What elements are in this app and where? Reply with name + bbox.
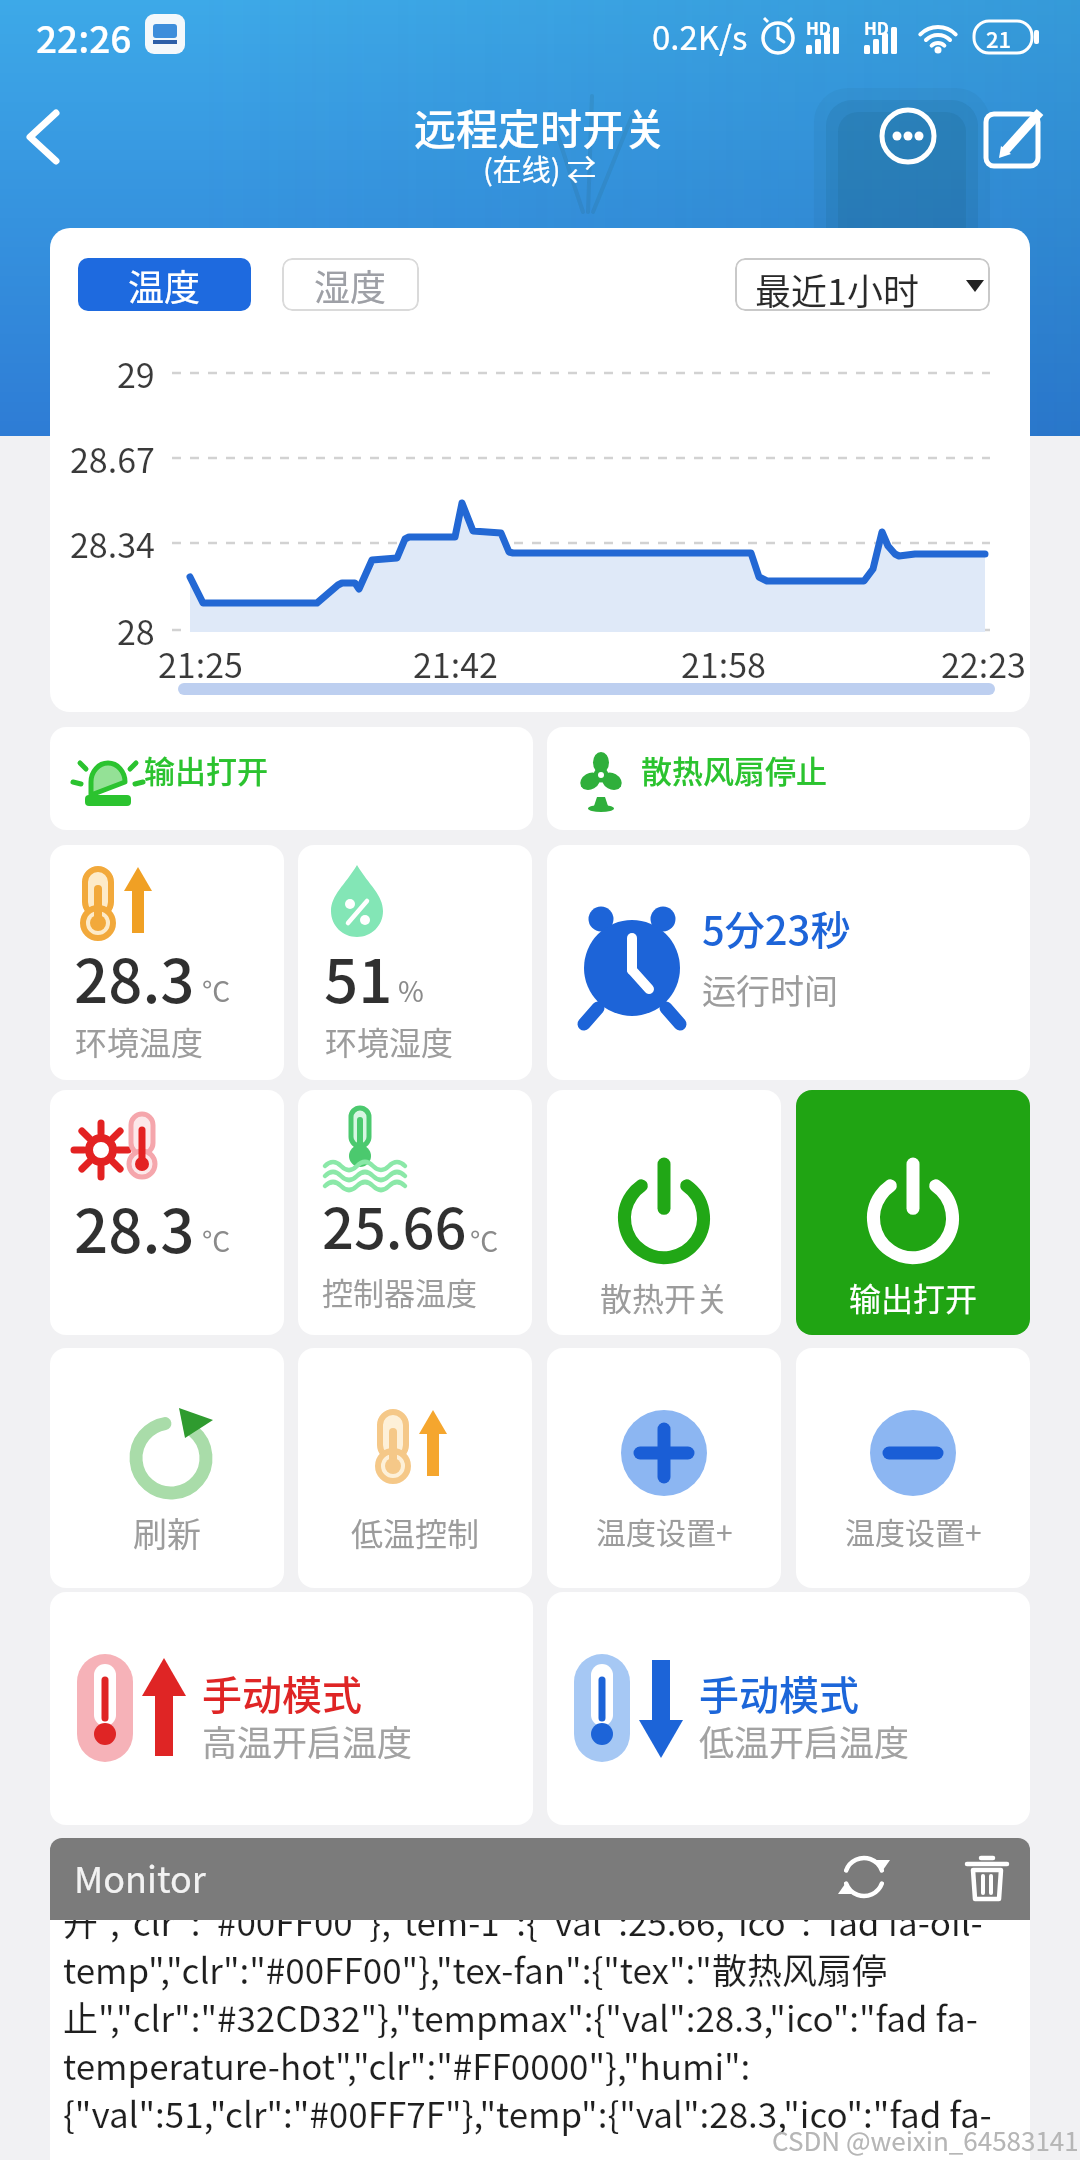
button[interactable]: 手动模式	[50, 1592, 533, 1825]
button[interactable]: 刷新	[50, 1348, 284, 1588]
staticText: 散热开关	[600, 1274, 729, 1320]
staticText: 29	[117, 349, 155, 398]
staticText: 28.3	[74, 933, 195, 1020]
staticText: 刷新	[133, 1508, 201, 1557]
button[interactable]: 湿度	[282, 258, 419, 311]
staticText: 输出打开	[144, 747, 268, 792]
staticText: 28.34	[70, 519, 155, 568]
staticText: 22:26	[36, 10, 132, 64]
staticText: 51	[324, 933, 393, 1020]
button[interactable]	[838, 1855, 894, 1903]
button[interactable]	[980, 100, 1056, 170]
staticText: 低温控制	[351, 1509, 480, 1555]
staticText: 手动模式	[699, 1664, 859, 1722]
staticText: 温度设置+	[845, 1509, 982, 1552]
staticText: {"val":51,"clr":"#00FF7F"},"temp":{"val"…	[63, 2087, 992, 2138]
staticText: 22:23	[941, 639, 1026, 688]
staticText: 低温开启温度	[699, 1715, 910, 1766]
staticText: 开","clr":"#00FF00"},"tem-1":{"val":25.66…	[63, 1920, 983, 1946]
staticText: 21:58	[681, 639, 766, 688]
staticText: 25.66	[322, 1184, 467, 1265]
staticText: Monitor	[74, 1851, 206, 1903]
staticText: CSDN @weixin_64583141	[772, 2121, 1079, 2159]
button[interactable]: 最近1小时	[735, 258, 990, 311]
button[interactable]	[16, 95, 80, 175]
staticText: 温度设置+	[596, 1509, 733, 1552]
staticText: °C	[470, 1220, 499, 1261]
button[interactable]: 28.3	[50, 845, 284, 1080]
button[interactable]: 温度设置+	[796, 1348, 1030, 1588]
staticText: 远程定时开关	[414, 96, 667, 157]
staticText: 散热风扇停止	[641, 747, 827, 792]
staticText: 环境湿度	[325, 1018, 454, 1064]
staticText: 21:42	[413, 639, 498, 688]
button[interactable]: 输出打开	[50, 727, 533, 830]
staticText: 21:25	[158, 639, 243, 688]
button[interactable]: 温度	[50, 228, 1030, 712]
button[interactable]	[876, 104, 940, 168]
staticText: 28	[117, 606, 155, 655]
button[interactable]: 温度设置+	[547, 1348, 781, 1588]
staticText: HD	[864, 15, 890, 40]
staticText: 28.67	[70, 434, 155, 483]
staticText: °C	[202, 1220, 231, 1261]
button[interactable]: 手动模式	[547, 1592, 1030, 1825]
button[interactable]: 28.3	[50, 1090, 284, 1335]
button[interactable]	[967, 1855, 1011, 1903]
staticText: 28.3	[74, 1183, 195, 1270]
staticText: 最近1小时	[755, 263, 919, 311]
staticText: 湿度	[314, 259, 387, 311]
staticText: temperature-hot","clr":"#FF0000"},"humi"…	[63, 2039, 751, 2090]
staticText: 止","clr":"#32CD32"},"tempmax":{"val":28.…	[63, 1991, 978, 2042]
staticText: temp","clr":"#00FF00"},"tex-fan":{"tex":…	[63, 1943, 887, 1994]
staticText: °C	[202, 970, 231, 1011]
button[interactable]: 散热开关	[547, 1090, 781, 1335]
staticText: %	[398, 970, 424, 1011]
button[interactable]: 5分23秒	[547, 845, 1030, 1080]
staticText: 运行时间	[702, 965, 838, 1014]
staticText: 温度	[128, 259, 201, 311]
staticText: 21	[986, 22, 1012, 54]
button[interactable]: 散热风扇停止	[547, 727, 1030, 830]
button[interactable]: 51	[298, 845, 532, 1080]
button[interactable]: 输出打开	[796, 1090, 1030, 1335]
staticText: (在线) ⇄	[483, 147, 597, 189]
staticText: 输出打开	[849, 1274, 978, 1320]
button[interactable]: 25.66	[298, 1090, 532, 1335]
staticText: HD	[806, 15, 832, 40]
staticText: 高温开启温度	[202, 1715, 413, 1766]
staticText: 控制器温度	[322, 1269, 477, 1314]
staticText: 手动模式	[202, 1664, 362, 1722]
staticText: 环境温度	[75, 1018, 204, 1064]
button[interactable]: 温度	[78, 258, 251, 311]
staticText: 5分23秒	[702, 899, 851, 957]
staticText: 0.2K/s	[652, 12, 748, 60]
button[interactable]: 低温控制	[298, 1348, 532, 1588]
